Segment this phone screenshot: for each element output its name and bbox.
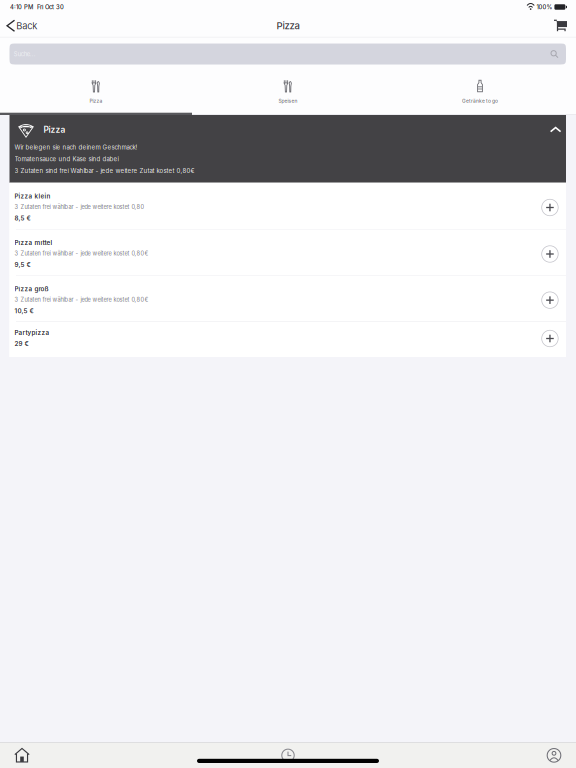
staticText: Tomatensauce und Käse sind dabei: [14, 155, 118, 163]
staticText: Partypizza: [14, 329, 49, 337]
staticText: 3 Zutaten frei wählbar - jede weitere ko…: [14, 296, 148, 303]
button[interactable]: Info: [532, 743, 576, 768]
staticText: 29 €: [14, 340, 28, 348]
staticText: 9,5 €: [14, 261, 30, 269]
button[interactable]: Pizza klein: [9, 183, 566, 229]
button[interactable]: Pizza mittel: [9, 230, 566, 275]
button[interactable]: Speisen: [192, 66, 384, 115]
button[interactable]: Pizza: [9, 115, 566, 183]
staticText: 3 Zutaten sind frei Wählbar - jede weite…: [14, 167, 194, 174]
staticText: Speisen: [278, 98, 297, 104]
staticText: Getränke to go: [462, 98, 498, 104]
staticText: 3 Zutaten frei wählbar - jede weitere ko…: [14, 250, 148, 257]
staticText: Back: [16, 20, 37, 31]
staticText: 10,5 €: [14, 307, 33, 315]
button[interactable]: Pizza: [0, 66, 192, 115]
staticText: Pizza: [276, 20, 299, 31]
button[interactable]: Warenkorb: [554, 14, 576, 37]
button[interactable]: Startseite: [0, 743, 44, 768]
staticText: Pizza groß: [14, 285, 48, 293]
staticText: Wir belegen sie nach deinem Geschmack!: [14, 144, 137, 151]
staticText: 8,5 €: [14, 214, 30, 222]
button[interactable]: Partypizza: [9, 322, 566, 357]
staticText: Pizza mittel: [14, 239, 52, 247]
staticText: Pizza: [89, 98, 102, 104]
staticText: Pizza klein: [14, 192, 50, 200]
button[interactable]: Getränke to go: [384, 66, 576, 115]
staticText: Suche...: [14, 50, 36, 58]
staticText: 4:10 PM: [10, 3, 33, 11]
button[interactable]: Back: [0, 14, 43, 37]
button[interactable]: Öffnungszeiten: [266, 743, 310, 768]
staticText: Pizza: [43, 125, 65, 135]
staticText: Fri Oct 30: [37, 3, 64, 11]
staticText: 3 Zutaten frei wählbar - jede weitere ko…: [14, 203, 144, 210]
staticText: 100%: [536, 3, 552, 11]
button[interactable]: Pizza groß: [9, 276, 566, 321]
